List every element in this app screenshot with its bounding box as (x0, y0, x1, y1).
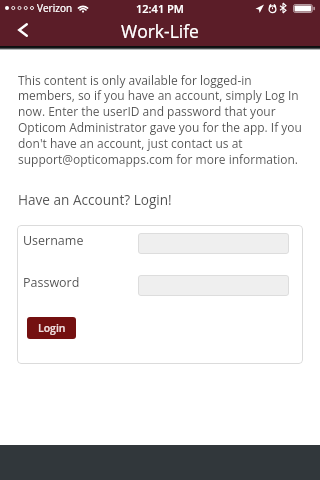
staticText: Login (38, 321, 66, 335)
staticText: Username (23, 232, 84, 249)
staticText: This content is only available for logge… (18, 72, 303, 168)
staticText: Work-Life (121, 19, 199, 43)
staticText: 12:41 PM (136, 1, 184, 16)
staticText: Have an Account? Login! (18, 190, 172, 209)
button[interactable]: Back (0, 17, 44, 43)
staticText: Verizon (37, 1, 73, 15)
staticText: Password (23, 274, 80, 291)
button[interactable]: Login (27, 317, 76, 339)
button[interactable] (138, 275, 289, 296)
button[interactable] (138, 233, 289, 254)
